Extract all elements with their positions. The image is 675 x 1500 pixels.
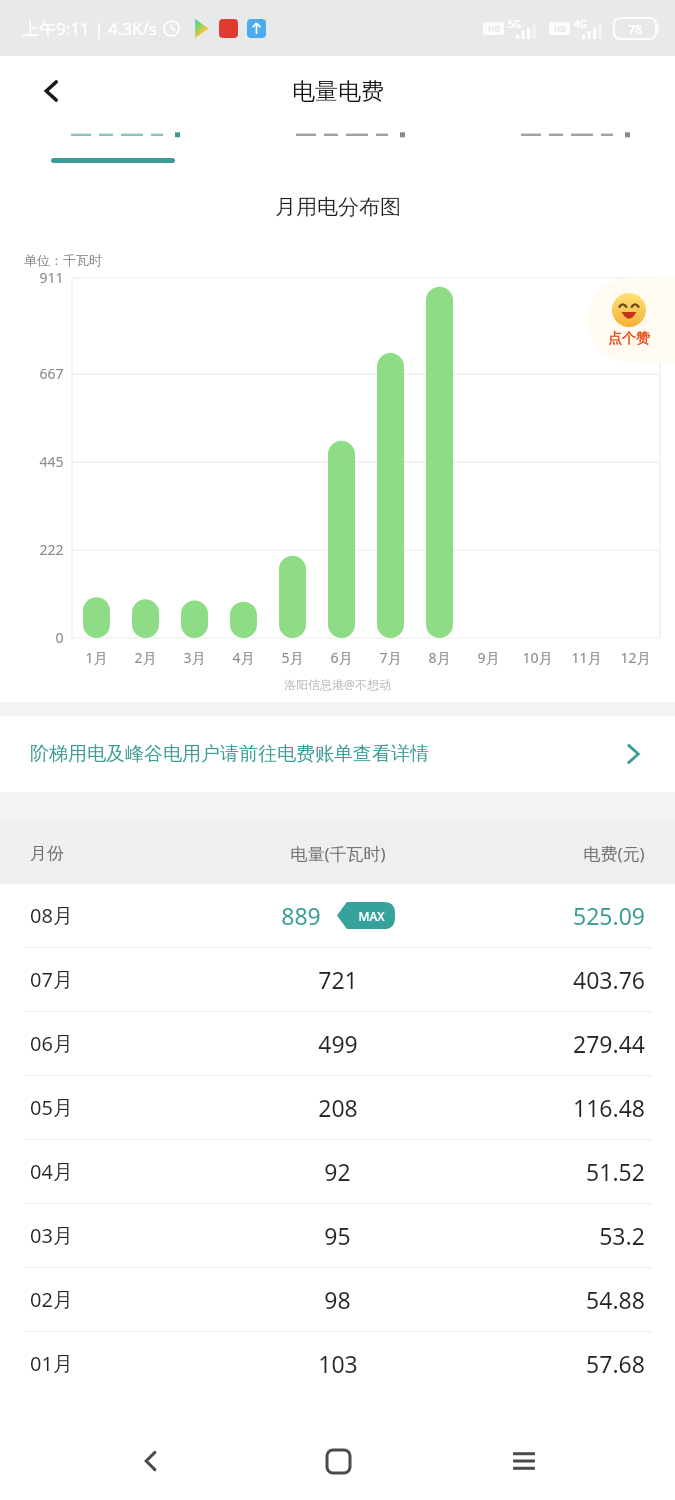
staticText: 07月 [30,966,73,993]
staticText: MAX [358,908,385,924]
staticText: 667 [39,364,64,383]
staticText: 月份 [30,843,64,864]
staticText: 721 [318,964,358,995]
staticText: 05月 [30,1094,73,1121]
staticText: 04月 [30,1158,73,1185]
staticText: 电费(元) [583,842,645,865]
button[interactable]: 06月 [0,1012,675,1075]
staticText: 279.44 [573,1028,645,1059]
staticText: 889 [281,900,321,931]
staticText: HD [554,23,566,34]
staticText: 上午9:11 | 4.3K/s [22,17,157,40]
button[interactable]: 05月 [0,1076,675,1139]
button[interactable]: 04月 [0,1140,675,1203]
staticText: 01月 [30,1350,73,1377]
staticText: 08月 [30,902,73,929]
staticText: 98 [324,1284,351,1315]
staticText: 53.2 [599,1220,645,1251]
staticText: 11月 [571,648,602,667]
staticText: 06月 [30,1030,73,1057]
button[interactable]: 08月 [0,884,675,947]
staticText: 116.48 [573,1092,645,1123]
button[interactable]: 年份 [263,126,413,158]
button[interactable]: 返回 [28,67,76,115]
staticText: 525.09 [573,900,645,931]
button[interactable]: 年份 [488,126,638,158]
staticText: 5月 [281,648,304,667]
staticText: 02月 [30,1286,73,1313]
staticText: 4月 [232,648,255,667]
staticText: 3月 [183,648,206,667]
staticText: 78 [628,21,642,37]
staticText: 10月 [522,648,553,667]
staticText: 222 [39,540,64,559]
button[interactable]: 年份 选中 [38,126,188,163]
staticText: 95 [324,1220,351,1251]
button[interactable]: 主页 [302,1425,374,1497]
staticText: 阶梯用电及峰谷电用户请前往电费账单查看详情 [30,742,429,766]
staticText: 57.68 [586,1348,645,1379]
button[interactable]: 最近任务 [488,1425,560,1497]
button[interactable]: 03月 [0,1204,675,1267]
staticText: 208 [318,1092,358,1123]
staticText: 4G [574,17,587,31]
staticText: 洛阳信息港@不想动 [284,676,391,692]
staticText: 5G [508,17,521,31]
staticText: 月用电分布图 [275,194,401,220]
staticText: 6月 [330,648,353,667]
button[interactable]: 阶梯用电及峰谷电用户请前往电费账单查看详情 [0,716,675,792]
staticText: 单位：千瓦时 [24,252,102,268]
button[interactable]: 02月 [0,1268,675,1331]
staticText: 1月 [85,648,108,667]
staticText: 54.88 [586,1284,645,1315]
staticText: 2月 [134,648,157,667]
staticText: 9月 [477,648,500,667]
button[interactable]: 07月 [0,948,675,1011]
button[interactable]: 返回 [115,1425,187,1497]
staticText: 7月 [379,648,402,667]
staticText: 点个赞 [608,330,650,348]
staticText: 8月 [428,648,451,667]
staticText: 403.76 [573,964,645,995]
button[interactable]: 点个赞 [587,278,675,362]
staticText: 92 [324,1156,351,1187]
staticText: 03月 [30,1222,73,1249]
staticText: 12月 [620,648,651,667]
staticText: 911 [39,268,64,287]
staticText: 103 [318,1348,358,1379]
staticText: 51.52 [586,1156,645,1187]
staticText: HD [488,23,500,34]
staticText: 0 [55,628,64,647]
staticText: 电量(千瓦时) [290,842,386,865]
staticText: 499 [318,1028,358,1059]
staticText: 电量电费 [292,77,384,106]
staticText: 445 [39,452,64,471]
button[interactable]: 01月 [0,1332,675,1395]
